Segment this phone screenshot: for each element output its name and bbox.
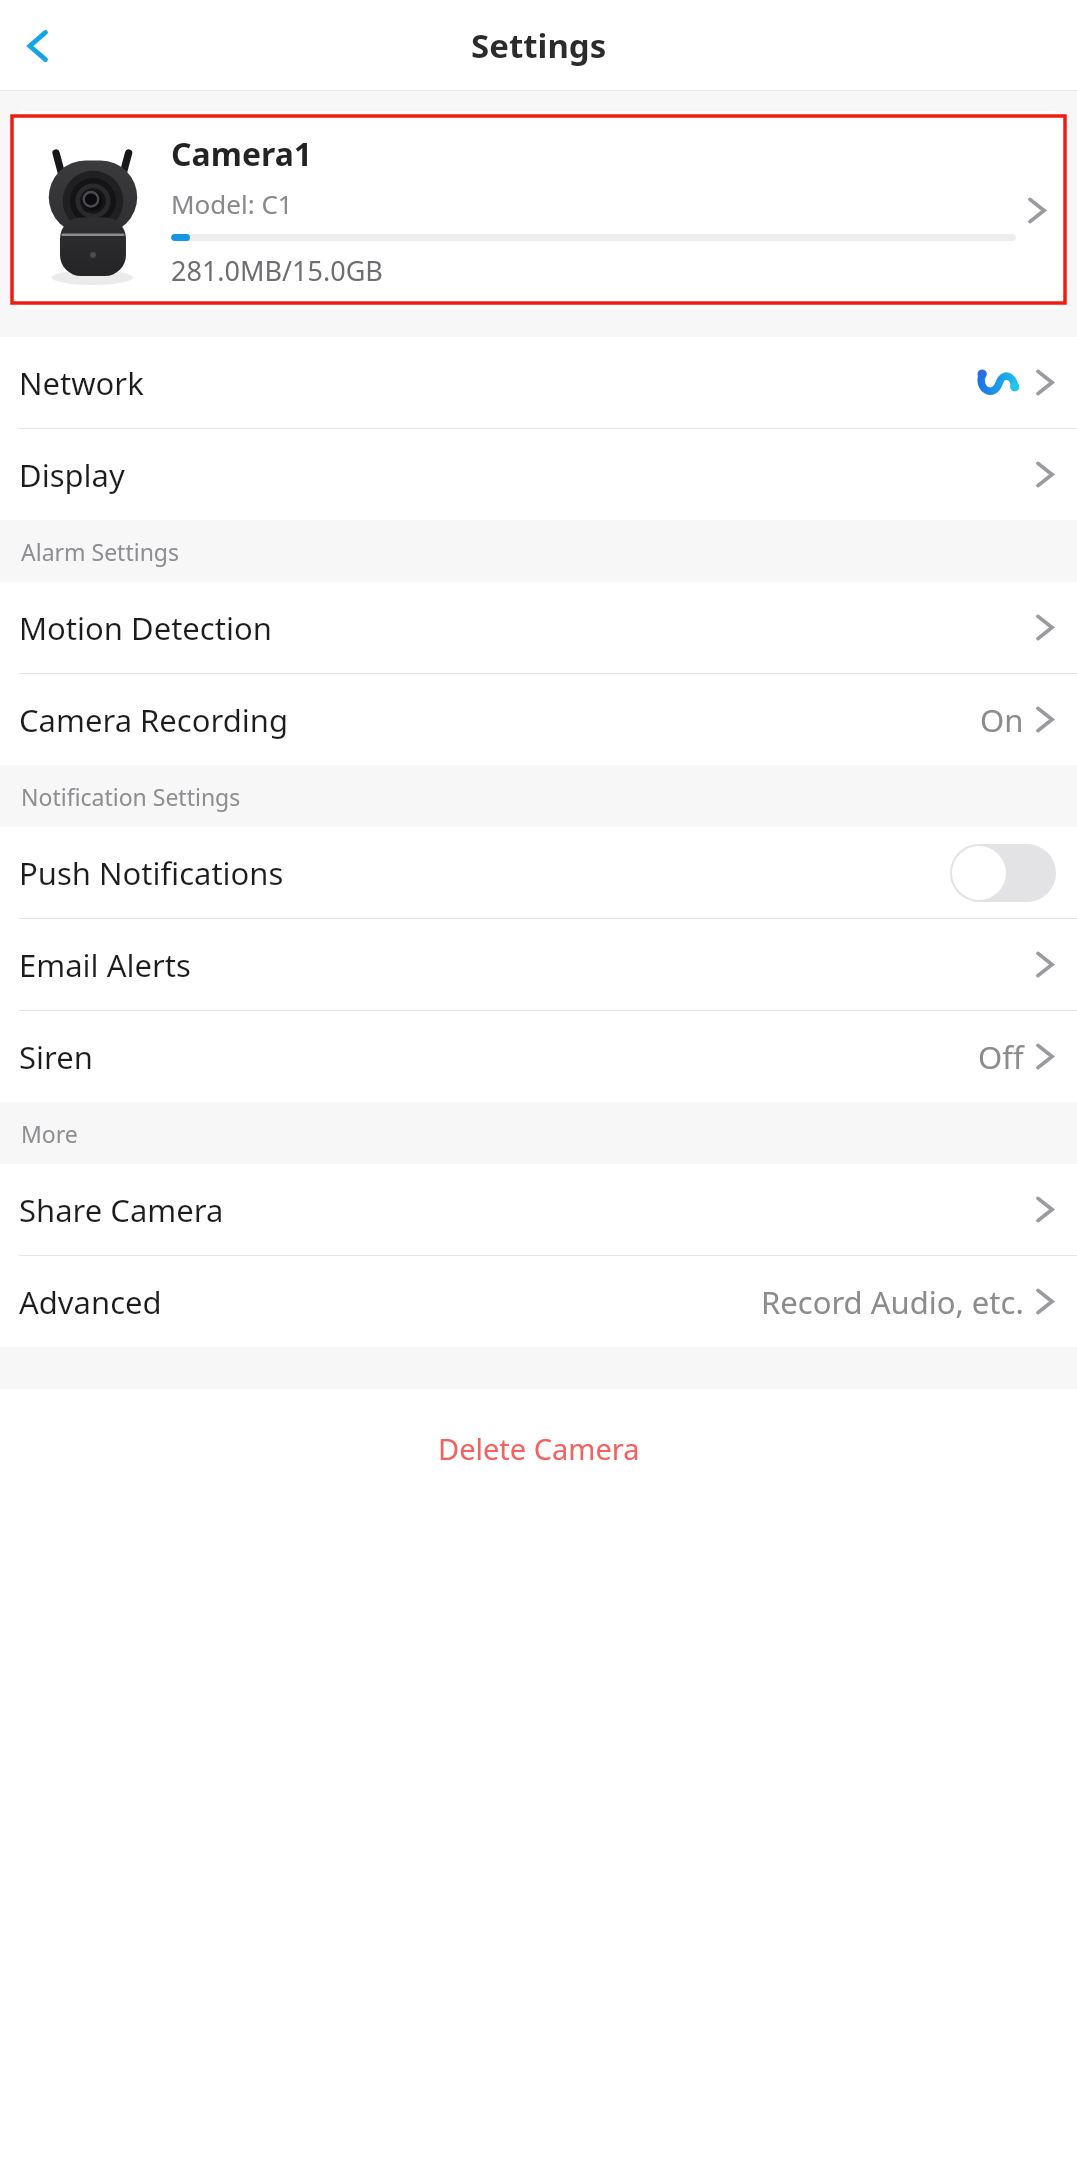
staticText: Notification Settings: [21, 781, 241, 812]
staticText: Camera Recording: [19, 699, 288, 741]
button[interactable]: Share Camera: [0, 1164, 1077, 1255]
staticText: Display: [19, 454, 125, 496]
staticText: Advanced: [19, 1281, 162, 1323]
staticText: Settings: [471, 23, 607, 68]
button[interactable]: Siren: [0, 1011, 1077, 1102]
button[interactable]: Delete Camera: [0, 1389, 1077, 2163]
button[interactable]: Camera Recording: [0, 674, 1077, 765]
staticText: Record Audio, etc.: [761, 1281, 1024, 1323]
staticText: Model: C1: [171, 186, 293, 221]
staticText: Delete Camera: [438, 1429, 640, 1468]
staticText: On: [980, 699, 1024, 741]
button[interactable]: Display: [0, 429, 1077, 520]
button[interactable]: Network: [0, 337, 1077, 428]
staticText: Alarm Settings: [21, 536, 180, 567]
staticText: Camera1: [171, 132, 313, 176]
staticText: 281.0MB/15.0GB: [171, 252, 383, 289]
staticText: Siren: [19, 1036, 93, 1078]
staticText: Motion Detection: [19, 607, 272, 649]
button[interactable]: Motion Detection: [0, 582, 1077, 673]
staticText: Email Alerts: [19, 944, 191, 986]
staticText: Share Camera: [19, 1189, 224, 1231]
button[interactable]: [11, 111, 1066, 309]
button[interactable]: Push Notifications toggle: [950, 844, 1056, 902]
button[interactable]: Email Alerts: [0, 919, 1077, 1010]
staticText: Network: [19, 362, 144, 404]
staticText: More: [21, 1118, 78, 1149]
button[interactable]: Advanced: [0, 1256, 1077, 1347]
button[interactable]: Back: [8, 16, 68, 76]
staticText: Push Notifications: [19, 852, 284, 894]
staticText: Off: [978, 1036, 1024, 1078]
button[interactable]: Push Notifications: [0, 827, 1077, 918]
